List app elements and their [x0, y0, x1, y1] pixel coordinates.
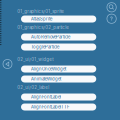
- button[interactable]: AlignFontLabel: [21, 93, 96, 100]
- button[interactable]: Back: [2, 58, 13, 69]
- staticText: 02_ui/01_widget: [17, 57, 53, 62]
- button[interactable]: AnimateWidget: [21, 75, 96, 82]
- staticText: AutoRemoveParticle: [31, 34, 70, 40]
- staticText: AlignOnceWidget: [31, 66, 66, 72]
- staticText: 01_graphics/01_sprite: [17, 9, 64, 14]
- staticText: ToggleParticle: [31, 44, 59, 50]
- staticText: AnimateWidget: [31, 76, 61, 82]
- staticText: AtlasSprite: [31, 16, 52, 22]
- button[interactable]: AutoRemoveParticle: [21, 33, 96, 40]
- staticText: 02_ui/02_label: [17, 85, 49, 90]
- staticText: AlignFontLabel: [31, 94, 61, 100]
- button[interactable]: AlignFontLabelTTF: [21, 103, 96, 110]
- staticText: AlignFontLabelTTF: [31, 104, 70, 110]
- button[interactable]: AlignOnceWidget: [21, 65, 96, 72]
- button[interactable]: AtlasSprite: [21, 15, 96, 22]
- button[interactable]: Help: [106, 13, 117, 24]
- button[interactable]: Search: [106, 2, 117, 13]
- button[interactable]: ToggleParticle: [21, 43, 96, 50]
- staticText: 01_graphics/02_particle: [17, 25, 69, 30]
